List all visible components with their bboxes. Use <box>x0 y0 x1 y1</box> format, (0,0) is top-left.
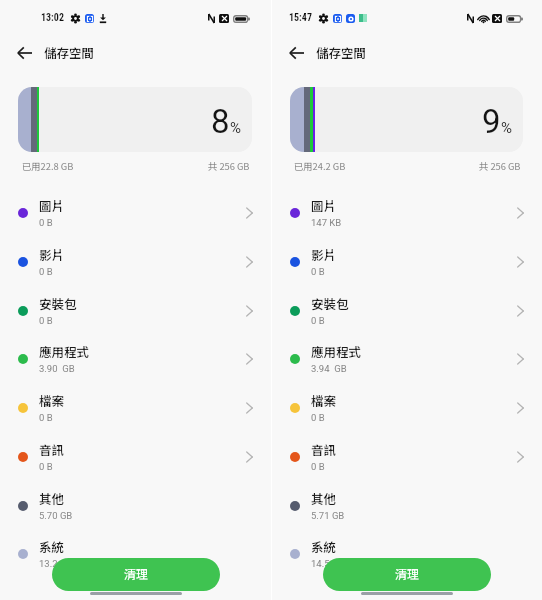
button[interactable]: 圖片 <box>0 188 271 237</box>
staticText: 0 B <box>311 461 325 472</box>
staticText: 已用22.8 GB <box>22 159 74 172</box>
staticText: 8 <box>211 102 230 141</box>
button[interactable]: 安裝包 <box>0 286 271 335</box>
staticText: 147 KB <box>311 217 342 228</box>
staticText: 檔案 <box>39 391 65 409</box>
staticText: 其他 <box>311 489 337 507</box>
staticText: 5.71 GB <box>311 510 345 521</box>
staticText: 影片 <box>39 245 65 263</box>
staticText: 5.70 GB <box>39 510 73 521</box>
button[interactable]: 影片 <box>0 237 271 286</box>
staticText: 0 B <box>39 412 53 423</box>
staticText: % <box>230 119 241 137</box>
staticText: 0 B <box>39 315 53 326</box>
button[interactable]: 檔案 <box>0 383 271 432</box>
staticText: 其他 <box>39 489 65 507</box>
button[interactable]: 其他 <box>272 481 542 530</box>
staticText: 0 B <box>39 461 53 472</box>
button[interactable]: Back <box>285 42 307 64</box>
button[interactable]: 安裝包 <box>272 286 542 335</box>
staticText: 清理 <box>124 565 149 582</box>
button[interactable]: 應用程式 <box>0 334 271 383</box>
button[interactable]: 音訊 <box>272 432 542 481</box>
staticText: 3.94 GB <box>311 363 347 374</box>
staticText: 圖片 <box>311 196 337 214</box>
button[interactable]: 檔案 <box>272 383 542 432</box>
staticText: 13.2 GB <box>39 558 73 569</box>
button[interactable]: 其他 <box>0 481 271 530</box>
button[interactable]: 圖片 <box>272 188 542 237</box>
staticText: 系統 <box>311 537 337 555</box>
button[interactable]: 系統 <box>0 529 271 578</box>
staticText: 3.90 GB <box>39 363 75 374</box>
staticText: 0 B <box>39 266 53 277</box>
button[interactable]: 清理 <box>52 558 220 591</box>
staticText: 影片 <box>311 245 337 263</box>
staticText: 0 B <box>311 266 325 277</box>
staticText: 系統 <box>39 537 65 555</box>
staticText: 0 B <box>311 412 325 423</box>
staticText: 13:02 <box>41 12 64 24</box>
staticText: 音訊 <box>39 440 65 458</box>
staticText: 應用程式 <box>39 342 90 360</box>
staticText: 9 <box>482 102 501 141</box>
staticText: 安裝包 <box>311 294 349 312</box>
button[interactable]: 應用程式 <box>272 334 542 383</box>
staticText: 儲存空間 <box>316 43 367 61</box>
staticText: 0 B <box>39 217 53 228</box>
staticText: % <box>501 119 512 137</box>
staticText: 0 B <box>311 315 325 326</box>
button[interactable]: Back <box>13 42 35 64</box>
staticText: 14.5 GB <box>311 558 345 569</box>
staticText: 15:47 <box>289 12 312 24</box>
staticText: 共 256 GB <box>208 159 250 172</box>
staticText: 檔案 <box>311 391 337 409</box>
staticText: 清理 <box>395 565 420 582</box>
staticText: 圖片 <box>39 196 65 214</box>
button[interactable]: 音訊 <box>0 432 271 481</box>
staticText: 音訊 <box>311 440 337 458</box>
staticText: 已用24.2 GB <box>294 159 346 172</box>
staticText: 應用程式 <box>311 342 362 360</box>
button[interactable]: 清理 <box>323 558 491 591</box>
staticText: 儲存空間 <box>44 43 95 61</box>
button[interactable]: 系統 <box>272 529 542 578</box>
button[interactable]: 影片 <box>272 237 542 286</box>
staticText: 共 256 GB <box>479 159 521 172</box>
staticText: 安裝包 <box>39 294 77 312</box>
